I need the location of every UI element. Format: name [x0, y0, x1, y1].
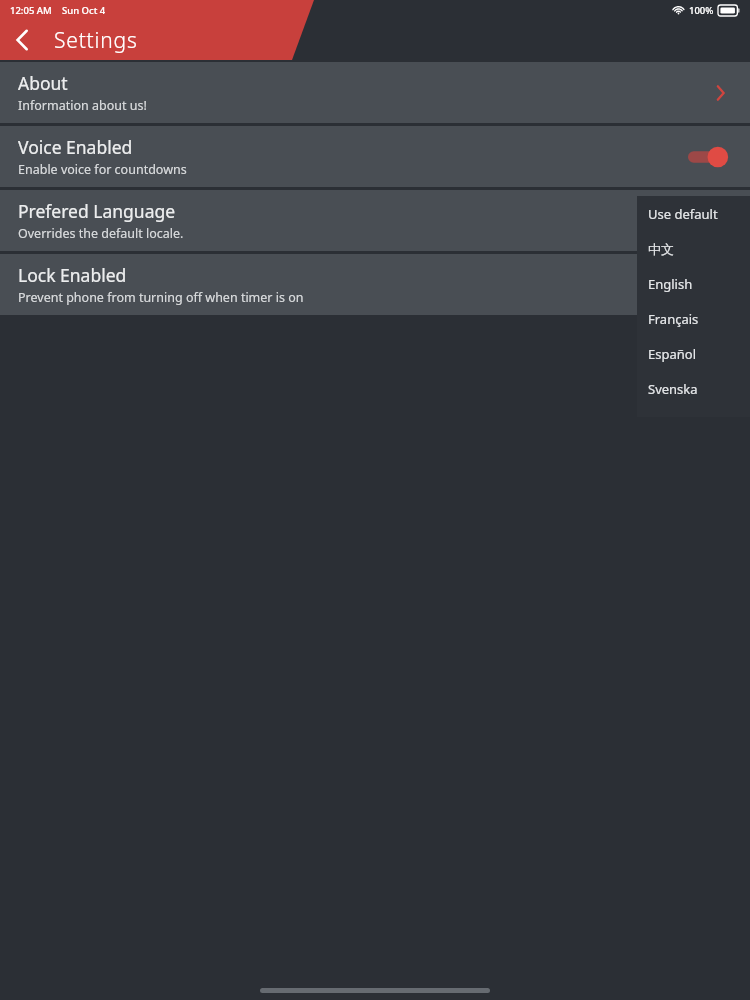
staticText: 中文	[648, 241, 674, 257]
button[interactable]: Svenska	[637, 371, 750, 406]
staticText: Lock Enabled	[18, 263, 127, 287]
button[interactable]: Voice Enabled	[0, 126, 750, 187]
staticText: 100%	[689, 4, 714, 17]
button[interactable]: Lock Enabled	[0, 254, 750, 315]
other: Open About	[708, 81, 732, 105]
staticText: Information about us!	[18, 97, 147, 114]
staticText: Prefered Language	[18, 199, 176, 223]
button[interactable]: Voice Enabled toggle	[688, 146, 732, 168]
button[interactable]: Prefered Language	[0, 190, 750, 251]
staticText: Use default	[648, 205, 718, 223]
staticText: Svenska	[648, 380, 698, 398]
staticText: English	[648, 275, 693, 293]
staticText: Settings	[54, 26, 138, 55]
button[interactable]: About	[0, 62, 750, 123]
button[interactable]: Use default	[637, 196, 750, 231]
staticText: About	[18, 71, 68, 95]
staticText: Español	[648, 345, 696, 363]
staticText: Sun Oct 4	[62, 4, 106, 17]
staticText: Enable voice for countdowns	[18, 161, 187, 178]
button[interactable]: Français	[637, 301, 750, 336]
button[interactable]: English	[637, 266, 750, 301]
button[interactable]: 中文	[637, 231, 750, 266]
staticText: Français	[648, 310, 699, 328]
button[interactable]: Español	[637, 336, 750, 371]
staticText: Prevent phone from turning off when time…	[18, 289, 304, 306]
staticText: Overrides the default locale.	[18, 225, 184, 242]
staticText: 12:05 AM	[10, 4, 52, 17]
button[interactable]: Back	[0, 20, 44, 60]
staticText: Voice Enabled	[18, 135, 133, 159]
